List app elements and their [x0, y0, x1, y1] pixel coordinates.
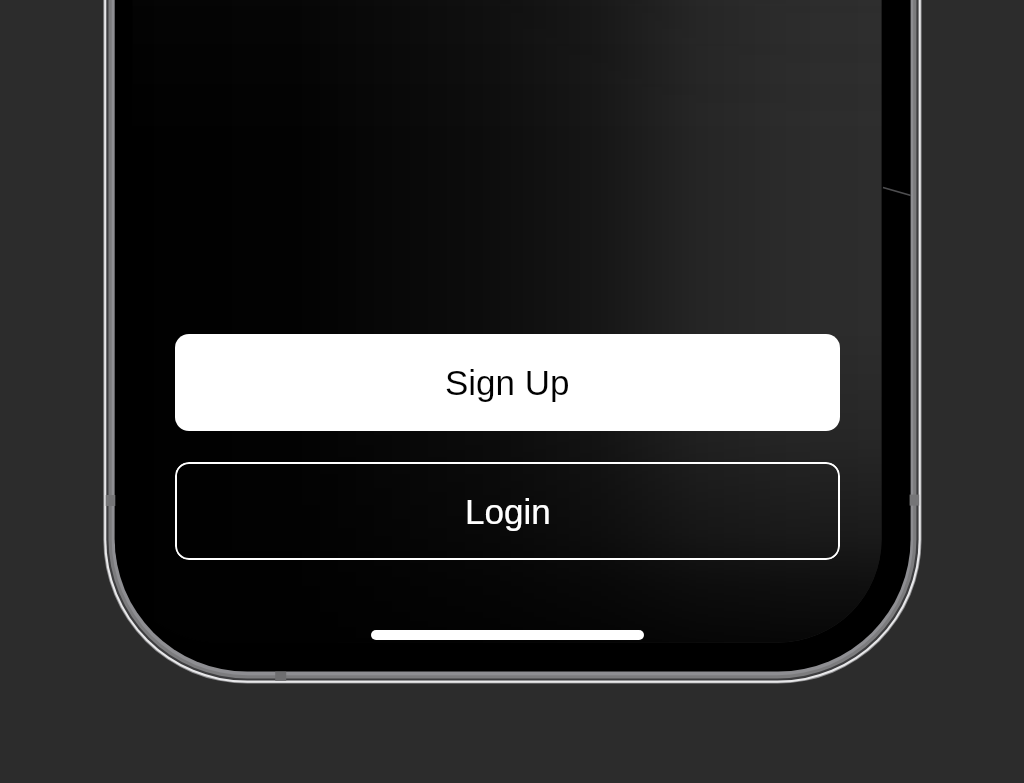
other: Home indicator: [371, 630, 644, 640]
button[interactable]: Login: [175, 462, 840, 560]
button[interactable]: Sign Up: [175, 334, 840, 431]
staticText: Login: [465, 492, 551, 531]
staticText: Sign Up: [445, 363, 570, 402]
